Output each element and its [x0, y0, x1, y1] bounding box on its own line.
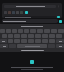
button[interactable]: Symbols	[0, 44, 8, 48]
button[interactable]	[4, 16, 56, 18]
button[interactable]: App badge	[30, 60, 34, 64]
button[interactable]: Space	[17, 44, 47, 48]
button[interactable]: Voice input	[59, 20, 62, 23]
button[interactable]	[2, 19, 58, 23]
button[interactable]: Enter	[56, 44, 64, 48]
button[interactable]: More options	[2, 3, 62, 18]
button[interactable]: Selected style	[25, 11, 28, 14]
button[interactable]: Send	[57, 16, 60, 18]
button[interactable]: Shift	[0, 39, 7, 43]
button[interactable]: Backspace	[56, 39, 64, 43]
button[interactable]: More options	[57, 5, 60, 8]
button[interactable]	[4, 5, 56, 8]
